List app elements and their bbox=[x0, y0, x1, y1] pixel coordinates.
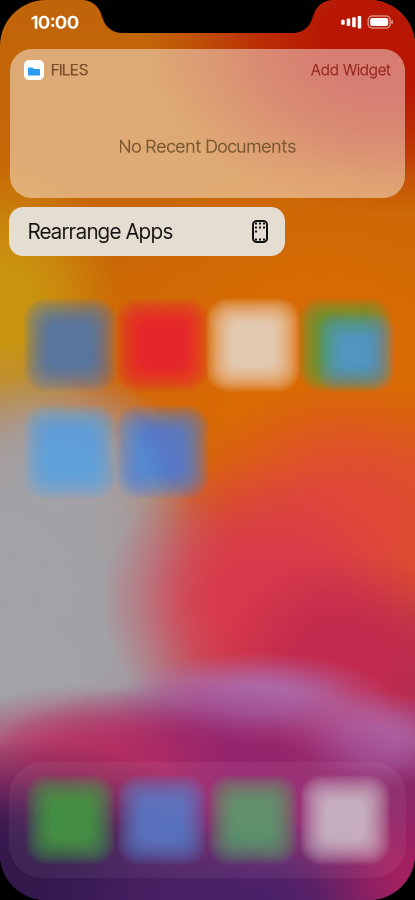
staticText: Rearrange Apps bbox=[28, 219, 173, 244]
staticText: FILES bbox=[51, 61, 88, 79]
staticText: Add Widget bbox=[311, 61, 391, 79]
button[interactable]: Rearrange Apps bbox=[9, 207, 285, 256]
staticText: 10:00 bbox=[31, 11, 79, 33]
staticText: No Recent Documents bbox=[118, 135, 296, 157]
button[interactable]: Add Widget bbox=[311, 61, 391, 79]
